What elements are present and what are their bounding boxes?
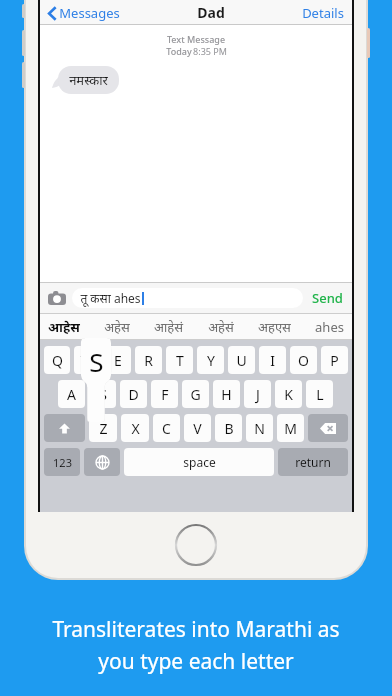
staticText: 123: [53, 455, 72, 470]
button[interactable]: O: [290, 346, 317, 374]
staticText: V: [193, 419, 202, 438]
staticText: Messages: [59, 4, 120, 22]
button[interactable]: L: [306, 380, 333, 408]
staticText: S: [99, 385, 107, 404]
staticText: space: [183, 454, 216, 470]
button[interactable]: V: [184, 414, 211, 442]
button[interactable]: N: [246, 414, 273, 442]
button[interactable]: G: [182, 380, 209, 408]
button[interactable]: W: [74, 346, 100, 374]
button[interactable]: ahes: [312, 318, 347, 336]
staticText: you type each letter: [98, 647, 294, 676]
button[interactable]: U: [228, 346, 255, 374]
staticText: Today: [165, 45, 193, 57]
button[interactable]: आहेस: [45, 318, 83, 336]
staticText: C: [162, 419, 171, 438]
staticText: Dad: [197, 3, 225, 22]
button[interactable]: 123: [44, 448, 80, 476]
button[interactable]: तू कसा ahes: [72, 288, 303, 308]
button[interactable]: E: [104, 346, 131, 374]
staticText: O: [298, 351, 309, 370]
staticText: नमस्कार: [69, 71, 108, 89]
button[interactable]: अहेसं: [205, 318, 237, 336]
staticText: W: [80, 351, 94, 370]
button[interactable]: C: [153, 414, 180, 442]
staticText: B: [224, 419, 234, 438]
button[interactable]: Y: [197, 346, 224, 374]
button[interactable]: J: [244, 380, 271, 408]
button[interactable]: F: [151, 380, 178, 408]
button[interactable]: A: [58, 380, 85, 408]
staticText: H: [221, 385, 232, 404]
staticText: A: [67, 385, 76, 404]
staticText: तू कसा ahes: [80, 290, 141, 306]
staticText: Text Message: [40, 33, 352, 45]
button[interactable]: X: [121, 414, 149, 442]
staticText: L: [316, 385, 324, 404]
button[interactable]: space: [124, 448, 274, 476]
staticText: J: [256, 385, 260, 404]
button[interactable]: Details: [300, 4, 346, 22]
button[interactable]: आहेसं: [151, 318, 186, 336]
staticText: U: [236, 351, 247, 370]
staticText: S: [89, 344, 104, 379]
staticText: Transliterates into Marathi as: [52, 615, 340, 644]
staticText: return: [295, 454, 331, 470]
staticText: Y: [207, 351, 215, 370]
button[interactable]: अहएस: [255, 318, 294, 336]
button[interactable]: अहेस: [101, 318, 133, 336]
staticText: R: [144, 351, 153, 370]
button[interactable]: M: [277, 414, 304, 442]
button[interactable]: S: [89, 380, 116, 408]
button[interactable]: K: [275, 380, 302, 408]
button[interactable]: H: [213, 380, 240, 408]
button[interactable]: Camera: [46, 287, 68, 309]
staticText: Q: [52, 351, 63, 370]
staticText: G: [190, 385, 201, 404]
staticText: T: [176, 351, 184, 370]
button[interactable]: नमस्कार: [58, 66, 119, 94]
staticText: E: [114, 351, 122, 370]
button[interactable]: B: [215, 414, 242, 442]
staticText: 8:35 PM: [193, 45, 227, 57]
staticText: F: [161, 385, 169, 404]
button[interactable]: Z: [89, 414, 117, 442]
button[interactable]: Q: [44, 346, 70, 374]
button[interactable]: D: [120, 380, 147, 408]
button[interactable]: Send: [309, 289, 346, 307]
staticText: Z: [99, 419, 108, 438]
button[interactable]: return: [278, 448, 348, 476]
staticText: N: [254, 419, 265, 438]
button[interactable]: T: [166, 346, 193, 374]
button[interactable]: Shift: [44, 414, 85, 442]
staticText: X: [131, 419, 140, 438]
button[interactable]: R: [135, 346, 162, 374]
staticText: D: [128, 385, 139, 404]
staticText: M: [284, 419, 297, 438]
staticText: I: [270, 351, 275, 370]
button[interactable]: Backspace: [308, 414, 348, 442]
button[interactable]: Messages: [46, 4, 122, 22]
button[interactable]: P: [321, 346, 348, 374]
button[interactable]: Change keyboard: [84, 448, 120, 476]
button[interactable]: I: [259, 346, 286, 374]
staticText: P: [330, 351, 339, 370]
staticText: K: [284, 385, 293, 404]
